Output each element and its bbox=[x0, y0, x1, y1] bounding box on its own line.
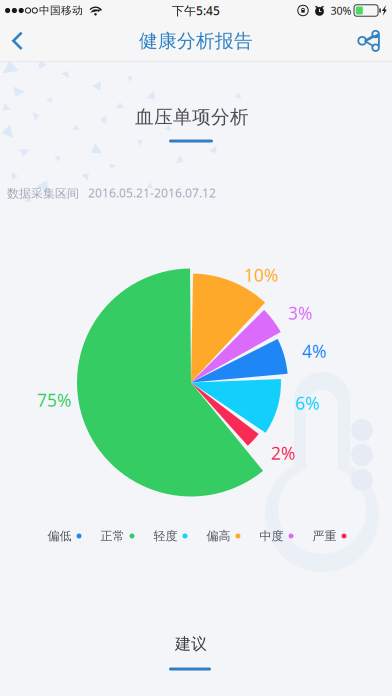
staticText: 中国移动 bbox=[39, 4, 83, 17]
staticText: 3% bbox=[288, 301, 312, 324]
staticText: 下午5:45 bbox=[172, 2, 220, 18]
staticText: 4% bbox=[302, 339, 326, 362]
staticText: 6% bbox=[295, 391, 319, 414]
staticText: 偏低 bbox=[47, 529, 71, 543]
staticText: 建议 bbox=[175, 634, 207, 654]
staticText: 严重 bbox=[312, 529, 336, 543]
staticText: 中度 bbox=[259, 529, 283, 543]
button[interactable]: 分享 Share bbox=[336, 21, 392, 60]
staticText: 10% bbox=[244, 263, 278, 286]
staticText: 数据采集区间 2016.05.21-2016.07.12 bbox=[7, 185, 216, 201]
staticText: 正常 bbox=[100, 529, 124, 543]
button[interactable]: 返回 Back bbox=[0, 22, 44, 60]
staticText: 轻度 bbox=[153, 529, 177, 543]
staticText: 健康分析报告 bbox=[139, 29, 253, 52]
staticText: 30% bbox=[330, 3, 351, 18]
staticText: 偏高 bbox=[206, 529, 230, 543]
staticText: 血压单项分析 bbox=[135, 105, 249, 128]
staticText: 2% bbox=[271, 441, 295, 464]
staticText: 75% bbox=[37, 388, 71, 411]
